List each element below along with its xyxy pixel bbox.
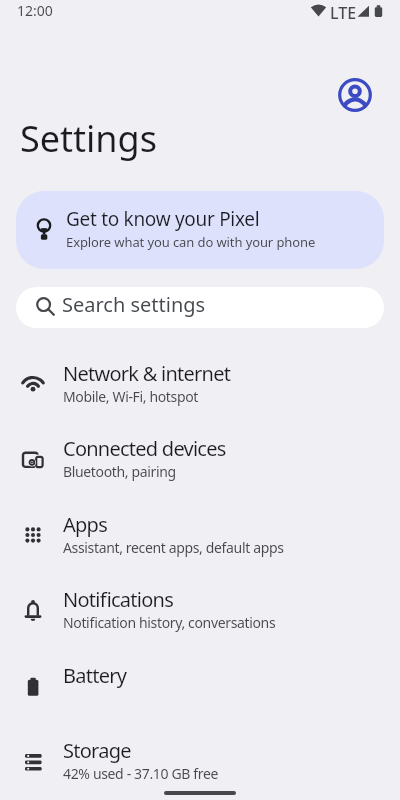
staticText: Network & internet	[63, 360, 231, 387]
staticText: Settings	[20, 114, 157, 163]
staticText: Mobile, Wi-Fi, hotspot	[63, 387, 199, 406]
button[interactable]: Network & internet	[0, 346, 400, 422]
staticText: 12:00	[17, 1, 53, 20]
staticText: Bluetooth, pairing	[63, 462, 176, 481]
staticText: Storage	[63, 737, 131, 764]
staticText: 42% used - 37.10 GB free	[63, 764, 219, 783]
staticText: Search settings	[62, 291, 206, 318]
button[interactable]: Get to know your Pixel	[16, 191, 384, 269]
button[interactable]	[338, 78, 372, 112]
staticText: Assistant, recent apps, default apps	[63, 538, 284, 557]
staticText: Connected devices	[63, 435, 226, 462]
button[interactable]: Battery	[0, 648, 400, 724]
staticText: Apps	[63, 511, 107, 538]
button[interactable]: Apps	[0, 497, 400, 573]
staticText: Battery	[63, 662, 127, 689]
staticText: Get to know your Pixel	[66, 206, 260, 232]
button[interactable]: Search settings	[16, 287, 384, 328]
button[interactable]: Storage	[0, 723, 400, 799]
staticText: LTE	[330, 2, 357, 24]
staticText: Notification history, conversations	[63, 613, 276, 632]
staticText: Notifications	[63, 586, 173, 613]
button[interactable]: Connected devices	[0, 421, 400, 497]
staticText: Explore what you can do with your phone	[66, 233, 316, 251]
button[interactable]: Notifications	[0, 572, 400, 648]
